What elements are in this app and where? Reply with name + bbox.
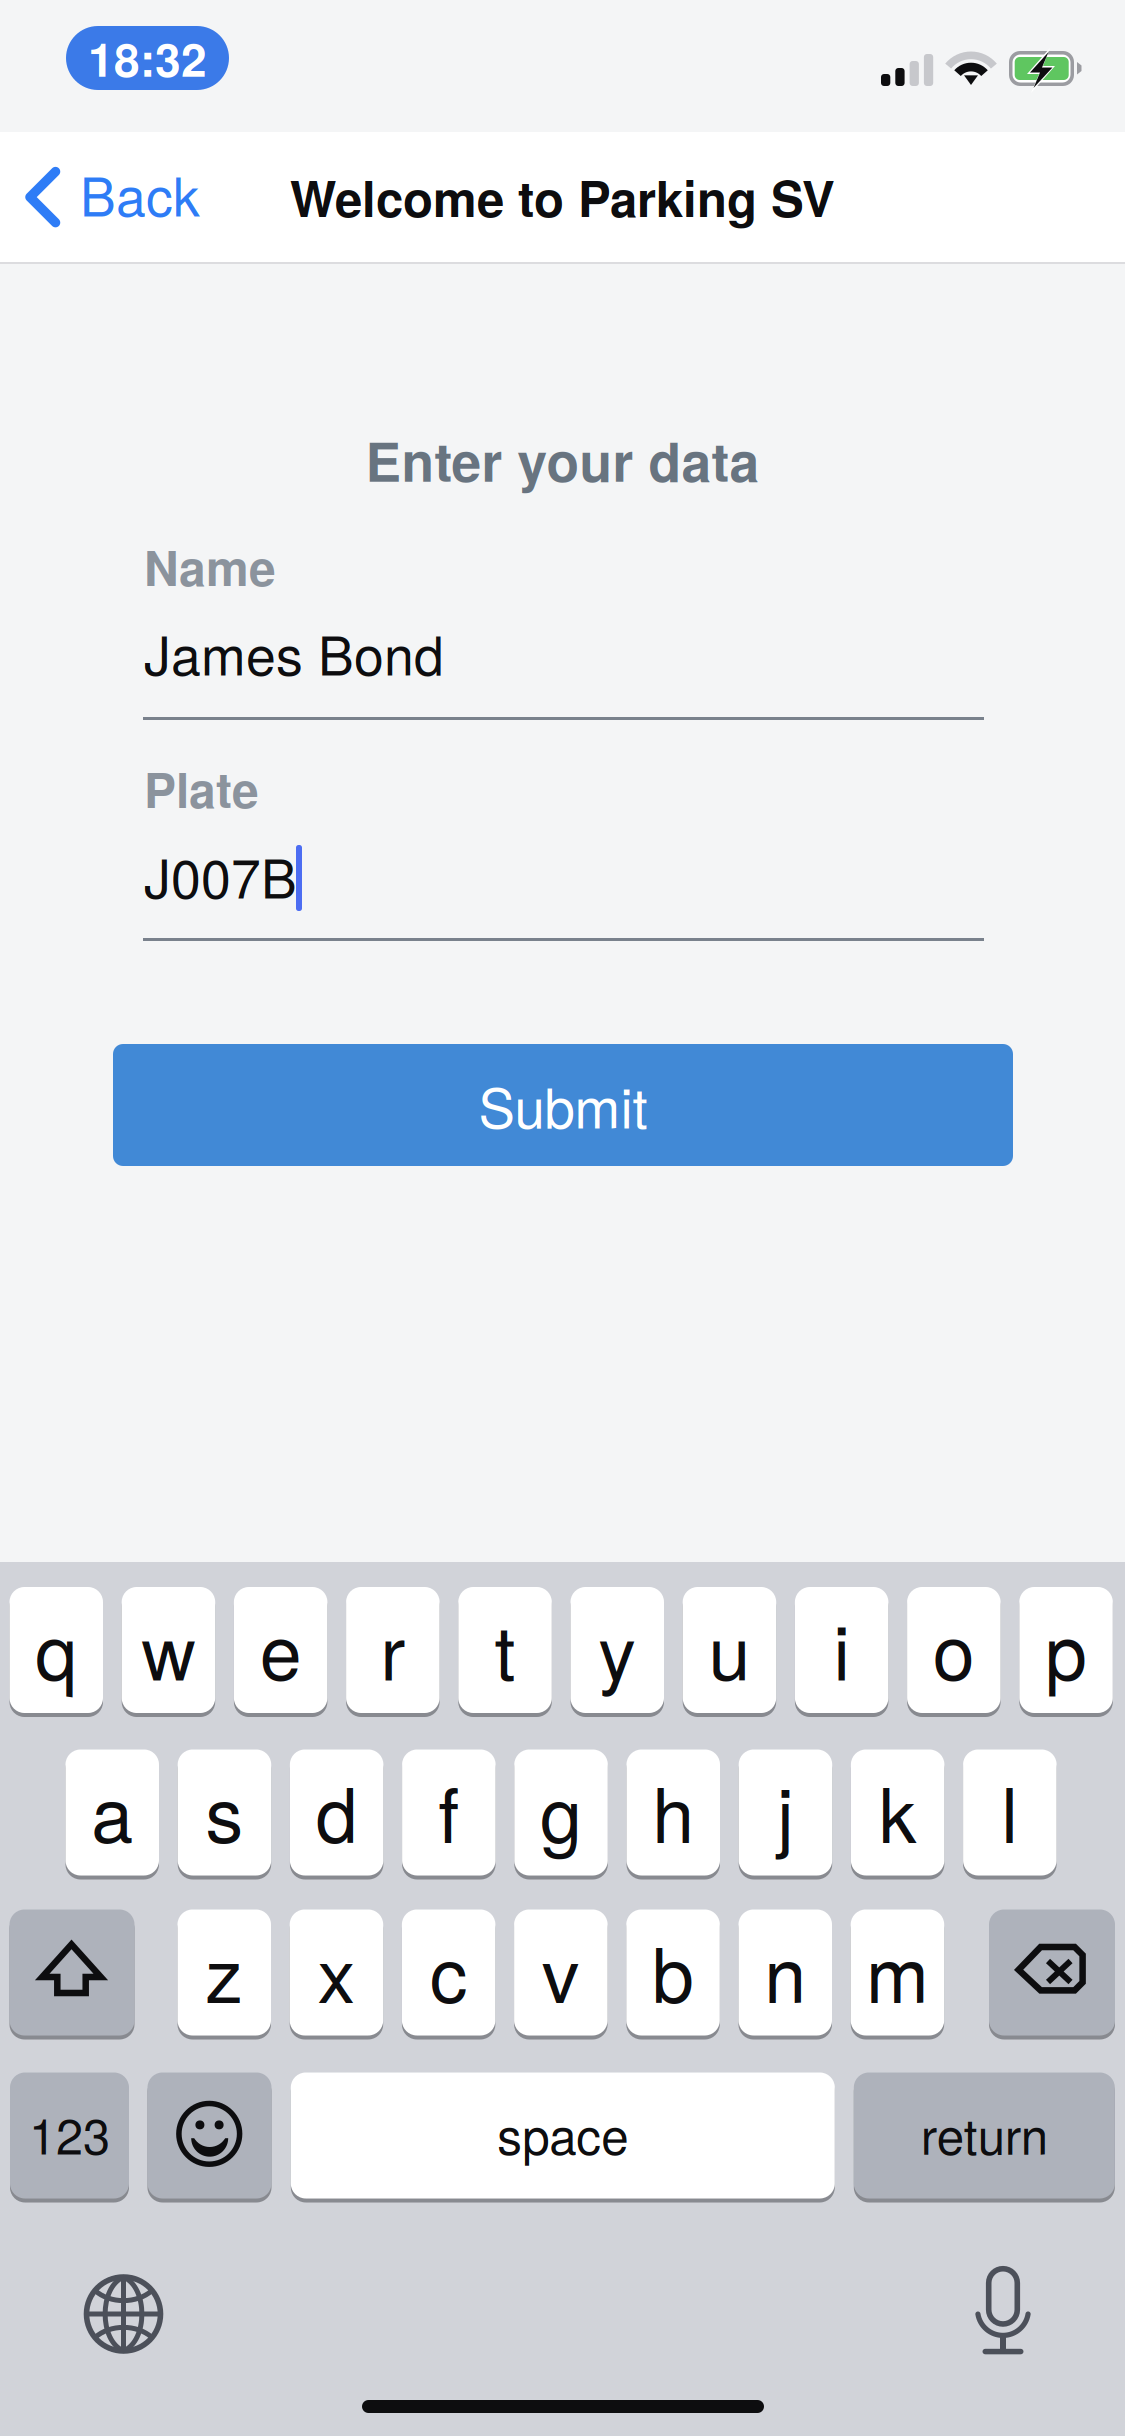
button[interactable]: v (514, 1907, 608, 2037)
staticText: s (205, 1757, 243, 1864)
button[interactable]: Emoji (147, 2070, 271, 2200)
button[interactable]: h (626, 1747, 720, 1877)
staticText: a (91, 1757, 133, 1864)
staticText: x (317, 1917, 355, 2024)
button[interactable]: w (122, 1585, 215, 1715)
staticText: Welcome to Parking SV (290, 162, 835, 232)
staticText: 18:32 (88, 25, 207, 91)
staticText: Enter your data (365, 422, 759, 498)
staticText: Plate (144, 754, 259, 823)
button[interactable]: b (626, 1907, 720, 2037)
staticText: return (921, 2098, 1048, 2169)
button[interactable]: Submit (113, 1044, 1013, 1166)
staticText: James Bond (144, 614, 444, 691)
staticText: p (1045, 1594, 1087, 1702)
staticText: i (833, 1594, 850, 1702)
button[interactable]: Delete (989, 1907, 1115, 2037)
button[interactable]: z (177, 1907, 271, 2037)
staticText: n (764, 1917, 806, 2024)
button[interactable]: d (290, 1747, 383, 1877)
button[interactable]: c (402, 1907, 495, 2037)
button[interactable]: 123 (10, 2070, 129, 2200)
staticText: y (598, 1594, 636, 1702)
button[interactable]: i (795, 1585, 888, 1715)
button[interactable]: o (907, 1585, 1001, 1715)
button[interactable]: Dictation (974, 2266, 1032, 2358)
button[interactable]: f (402, 1747, 496, 1877)
staticText: z (205, 1917, 243, 2024)
button[interactable]: Back (0, 132, 215, 264)
staticText: e (260, 1594, 302, 1702)
button[interactable]: t (458, 1585, 552, 1715)
button[interactable]: j (739, 1747, 832, 1877)
staticText: o (933, 1594, 975, 1702)
button[interactable]: x (290, 1907, 383, 2037)
staticText: l (1001, 1757, 1018, 1864)
staticText: r (380, 1594, 405, 1702)
staticText: Submit (478, 1066, 647, 1144)
button[interactable]: u (683, 1585, 776, 1715)
staticText: space (497, 2098, 628, 2169)
button[interactable]: r (346, 1585, 440, 1715)
staticText: d (316, 1757, 358, 1864)
button[interactable]: q (9, 1585, 103, 1715)
staticText: v (542, 1917, 580, 2024)
button[interactable]: g (514, 1747, 608, 1877)
staticText: m (866, 1917, 929, 2024)
staticText: Name (144, 532, 276, 601)
button[interactable]: s (178, 1747, 271, 1877)
staticText: k (879, 1757, 917, 1864)
button[interactable]: Next keyboard (83, 2273, 164, 2354)
button[interactable]: m (851, 1907, 944, 2037)
staticText: Back (80, 155, 200, 232)
button[interactable]: k (851, 1747, 944, 1877)
button[interactable]: n (738, 1907, 832, 2037)
staticText: f (438, 1757, 459, 1864)
button[interactable]: l (963, 1747, 1057, 1877)
button[interactable]: p (1019, 1585, 1113, 1715)
button[interactable]: Shift (9, 1907, 134, 2037)
staticText: w (141, 1594, 195, 1702)
staticText: b (652, 1917, 694, 2024)
staticText: t (495, 1594, 516, 1702)
staticText: q (35, 1594, 77, 1702)
button[interactable]: e (234, 1585, 327, 1715)
staticText: g (540, 1757, 582, 1864)
staticText: u (708, 1594, 750, 1702)
staticText: J007B (144, 837, 297, 914)
button[interactable]: a (65, 1747, 159, 1877)
button[interactable]: y (570, 1585, 664, 1715)
button[interactable]: space (291, 2070, 835, 2200)
staticText: h (652, 1757, 694, 1864)
button[interactable]: return (854, 2070, 1115, 2200)
staticText: 123 (29, 2099, 110, 2168)
staticText: j (777, 1757, 794, 1864)
staticText: c (430, 1917, 468, 2024)
